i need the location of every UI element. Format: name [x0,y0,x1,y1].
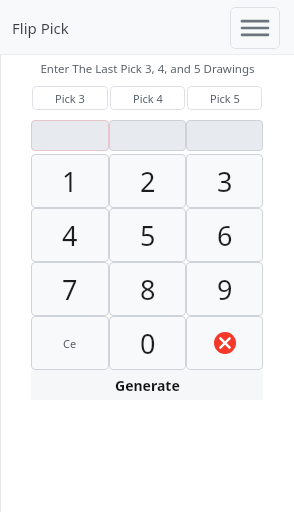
staticText: Generate [115,376,180,395]
button[interactable]: 9 [186,262,263,316]
button[interactable]: 5 [109,208,186,262]
staticText: 4 [62,217,78,254]
button[interactable]: 7 [31,262,109,316]
button[interactable]: 0 [109,316,186,370]
button[interactable]: Digit 3 [186,120,263,151]
staticText: Flip Pick [12,18,69,38]
button[interactable]: 4 [31,208,109,262]
button[interactable]: 1 [31,154,109,208]
staticText: Pick 3 [55,91,85,106]
staticText: Pick 5 [210,91,240,106]
staticText: 6 [217,217,233,254]
button[interactable]: 8 [109,262,186,316]
button[interactable]: Pick 4 [110,86,185,110]
button[interactable]: 3 [186,154,263,208]
staticText: 3 [217,163,233,200]
staticText: 8 [140,271,156,308]
button[interactable]: 6 [186,208,263,262]
staticText: 9 [217,271,233,308]
staticText: Ce [63,336,77,351]
staticText: 7 [62,271,78,308]
button[interactable]: Pick 5 [187,86,262,110]
button[interactable]: Generate [31,370,263,400]
button[interactable]: Pick 3 [32,86,108,110]
button[interactable]: Ce [31,316,109,370]
button[interactable]: 2 [109,154,186,208]
staticText: Enter The Last Pick 3, 4, and 5 Drawings [40,61,255,77]
button[interactable]: Digit 2 [109,120,186,151]
button[interactable]: Delete [186,316,263,370]
button[interactable]: Flip Pick [12,18,69,38]
staticText: 5 [140,217,156,254]
staticText: Pick 4 [133,91,163,106]
button[interactable]: Menu [230,7,280,49]
staticText: 2 [140,163,156,200]
button[interactable]: Digit 1 [31,120,109,151]
staticText: 0 [140,325,156,362]
staticText: 1 [62,163,78,200]
